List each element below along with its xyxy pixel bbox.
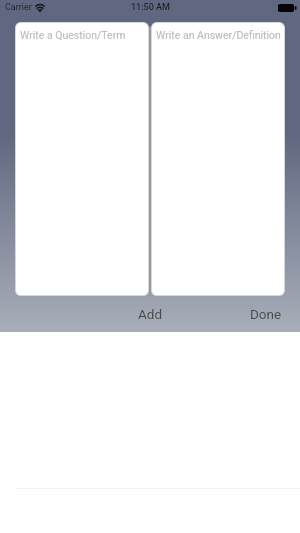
other: Wi-Fi signal bbox=[35, 3, 45, 12]
other: Battery full bbox=[278, 4, 297, 12]
staticText: Write an Answer/Definition bbox=[156, 29, 281, 41]
staticText: 11:50 AM bbox=[131, 2, 170, 13]
staticText: Add bbox=[138, 306, 163, 322]
button[interactable]: Write a Question/Term bbox=[15, 22, 149, 296]
button[interactable]: Add bbox=[120, 303, 180, 325]
button[interactable]: Write an Answer/Definition bbox=[151, 22, 285, 296]
staticText: Carrier bbox=[5, 2, 32, 13]
staticText: Done bbox=[250, 306, 282, 322]
staticText: Write a Question/Term bbox=[20, 29, 126, 41]
button[interactable]: Done bbox=[236, 303, 296, 325]
